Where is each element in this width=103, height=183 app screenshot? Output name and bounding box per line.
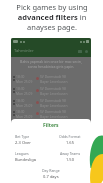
staticText: Tahminler (14, 48, 34, 54)
button[interactable]: 18:30 (11, 108, 91, 119)
staticText: Bayer Leverkusen (40, 114, 68, 118)
staticText: Pick games by using advanced filters in … (16, 2, 88, 32)
button[interactable]: 18:30 (11, 96, 91, 108)
staticText: Odds Format (59, 134, 81, 139)
staticText: 18:30 (16, 86, 25, 90)
staticText: Bayer Leverkusen (40, 91, 68, 95)
staticText: Bahis yapmak icin once bir mac secin, so… (20, 59, 82, 69)
staticText: Filters (43, 122, 59, 129)
staticText: SV Darmstadt 98 (40, 98, 66, 102)
staticText: 18:30 (16, 109, 25, 113)
staticText: Away Teams (60, 151, 81, 156)
staticText: Day Range (42, 168, 60, 173)
staticText: SV Darmstadt 98 (40, 86, 66, 90)
staticText: Mon 25.09 (16, 114, 33, 118)
staticText: Bayer Leverkusen (40, 79, 68, 83)
staticText: 1.65 (66, 140, 74, 145)
staticText: 18:30 (16, 74, 25, 78)
button[interactable]: 18:30 (11, 84, 91, 96)
button[interactable]: 18:30 (11, 72, 91, 84)
staticText: Bet Type (15, 134, 30, 139)
staticText: 18:30 (16, 98, 25, 102)
staticText: Bundesliga (15, 157, 36, 162)
staticText: Mon 25.09 (16, 79, 33, 83)
staticText: Mon 25.09 (16, 103, 33, 107)
staticText: SV Darmstadt 98 (40, 74, 66, 78)
other: App logo (0, 0, 103, 183)
staticText: 0-7 days (43, 174, 59, 179)
staticText: Leagues (15, 151, 29, 156)
staticText: SV Darmstadt 98 (40, 109, 66, 113)
staticText: Bayer Leverkusen (40, 103, 68, 107)
staticText: 2-3 Over (15, 140, 31, 145)
staticText: Mon 25.09 (16, 91, 33, 95)
staticText: 1.50 (66, 157, 74, 162)
